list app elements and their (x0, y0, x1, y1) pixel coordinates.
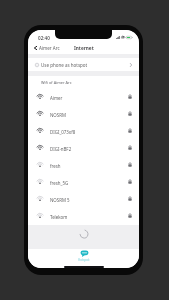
staticText: Hotspot (78, 258, 90, 262)
button[interactable]: Hotspot (73, 249, 95, 262)
staticText: Internet (74, 45, 94, 51)
staticText: Telekom (50, 214, 68, 220)
staticText: fresh (50, 163, 61, 169)
button[interactable]: Use phone as hotspot (28, 58, 139, 71)
button[interactable]: fresh_5G (28, 174, 139, 191)
staticText: NOSRM (50, 112, 66, 118)
button[interactable]: NOSRM (28, 106, 139, 123)
staticText: Wifi of Aimer Arc (41, 80, 72, 85)
staticText: DIGI_073xf8 (50, 129, 76, 135)
button[interactable]: NOSRM 5 (28, 191, 139, 208)
button[interactable]: DIGI_073xf8 (28, 123, 139, 140)
staticText: fresh_5G (50, 180, 69, 186)
staticText: NOSRM 5 (50, 197, 70, 203)
other: Hotspot (80, 250, 89, 257)
staticText: Aimer (50, 95, 63, 101)
staticText: Use phone as hotspot (41, 62, 88, 68)
button[interactable]: Aimer (28, 89, 139, 106)
button[interactable]: DIGI-nBF2 (28, 140, 139, 157)
button[interactable]: Aimer Arc (28, 43, 65, 53)
button[interactable]: fresh (28, 157, 139, 174)
staticText: 02:40 (38, 35, 50, 41)
staticText: DIGI-nBF2 (50, 146, 72, 152)
button[interactable]: Telekom (28, 208, 139, 225)
staticText: Aimer Arc (39, 45, 60, 51)
